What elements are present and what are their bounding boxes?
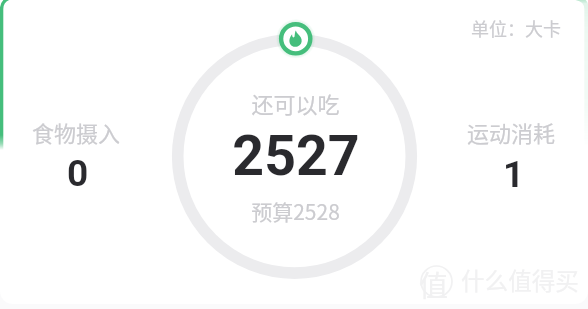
staticText: 值 <box>419 263 449 305</box>
staticText: 预算2528 <box>251 196 340 226</box>
staticText: 0 <box>67 152 89 195</box>
button[interactable] <box>181 42 408 269</box>
staticText: 2527 <box>232 124 360 189</box>
staticText: 还可以吃 <box>251 87 340 119</box>
button[interactable]: 食物摄入 <box>8 108 144 200</box>
staticText: 什么值得买 <box>461 263 579 297</box>
staticText: 单位：大卡 <box>471 15 561 41</box>
button[interactable]: 运动消耗 <box>443 108 579 200</box>
staticText: 运动消耗 <box>467 116 556 148</box>
staticText: 1 <box>503 153 525 196</box>
button[interactable]: Calories burned <box>276 19 316 59</box>
button[interactable]: 单位：大卡 <box>471 15 561 41</box>
staticText: 食物摄入 <box>32 116 121 148</box>
